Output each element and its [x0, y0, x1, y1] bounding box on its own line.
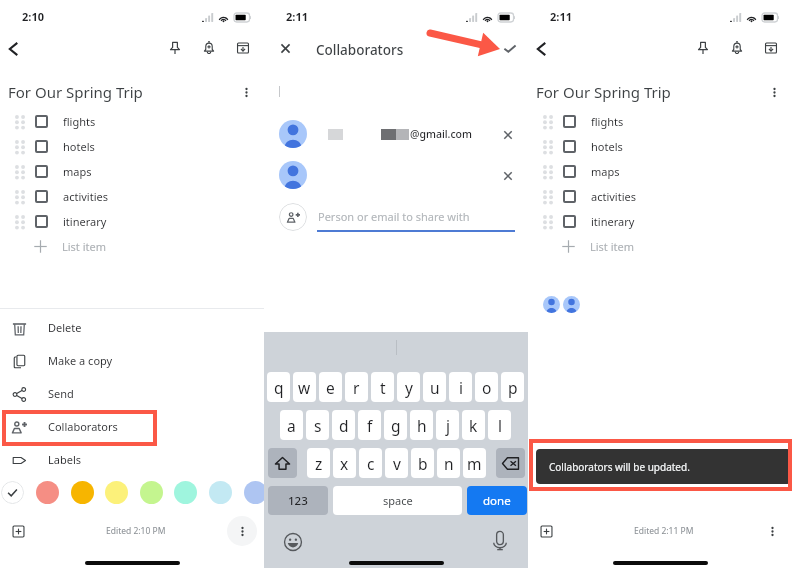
- button[interactable]: r: [345, 372, 368, 402]
- button[interactable]: [71, 481, 94, 504]
- button[interactable]: x: [333, 448, 356, 478]
- button[interactable]: a: [280, 410, 303, 440]
- button[interactable]: Remind me: [725, 36, 749, 60]
- staticText: n: [444, 453, 454, 474]
- button[interactable]: hotels: [528, 134, 792, 159]
- staticText: Collaborators will be updated.: [549, 460, 690, 474]
- button[interactable]: Add person: [279, 203, 307, 231]
- staticText: Send: [48, 386, 74, 401]
- button[interactable]: Voice input: [489, 529, 511, 551]
- button[interactable]: hotels: [0, 134, 264, 159]
- staticText: z: [315, 453, 323, 474]
- button[interactable]: n: [437, 448, 460, 478]
- staticText: Collaborators: [316, 41, 404, 59]
- button[interactable]: [209, 481, 232, 504]
- staticText: y: [405, 377, 413, 398]
- button[interactable]: m: [463, 448, 486, 478]
- staticText: Labels: [48, 452, 82, 467]
- button[interactable]: g: [384, 410, 407, 440]
- button[interactable]: List item: [528, 234, 792, 259]
- button[interactable]: [264, 120, 528, 148]
- button[interactable]: itinerary: [0, 209, 264, 234]
- staticText: p: [508, 377, 518, 398]
- button[interactable]: Emoji: [283, 532, 303, 552]
- button[interactable]: Save: [498, 36, 522, 60]
- button[interactable]: y: [397, 372, 420, 402]
- button[interactable]: [174, 481, 197, 504]
- button[interactable]: Remove collaborator: [496, 164, 519, 187]
- button[interactable]: p: [501, 372, 524, 402]
- button[interactable]: More options: [227, 516, 257, 546]
- button[interactable]: d: [332, 410, 355, 440]
- button[interactable]: Archive: [759, 36, 783, 60]
- button[interactable]: 123: [268, 486, 328, 515]
- button[interactable]: flights: [0, 109, 264, 134]
- button[interactable]: More options: [762, 521, 782, 541]
- button[interactable]: Back: [533, 40, 550, 57]
- button[interactable]: [105, 481, 128, 504]
- button[interactable]: activities: [0, 184, 264, 209]
- button[interactable]: Delete: [0, 311, 264, 344]
- button[interactable]: q: [267, 372, 290, 402]
- button[interactable]: i: [449, 372, 472, 402]
- button[interactable]: [264, 161, 528, 189]
- button[interactable]: maps: [528, 159, 792, 184]
- button[interactable]: More options: [764, 82, 784, 102]
- button[interactable]: space: [333, 486, 462, 515]
- button[interactable]: Shift: [268, 448, 297, 478]
- staticText: List item: [590, 239, 634, 254]
- button[interactable]: done: [467, 486, 527, 515]
- staticText: itinerary: [63, 214, 107, 229]
- button[interactable]: Back: [5, 40, 22, 57]
- button[interactable]: w: [293, 372, 316, 402]
- button[interactable]: Add: [7, 520, 29, 542]
- button[interactable]: [244, 481, 267, 504]
- button[interactable]: l: [488, 410, 511, 440]
- button[interactable]: Labels: [0, 443, 264, 476]
- staticText: e: [326, 377, 335, 398]
- button[interactable]: Close: [273, 36, 297, 60]
- button[interactable]: [36, 481, 59, 504]
- button[interactable]: Pin: [691, 36, 715, 60]
- staticText: 123: [288, 493, 308, 509]
- button[interactable]: flights: [528, 109, 792, 134]
- button[interactable]: u: [423, 372, 446, 402]
- button[interactable]: Backspace: [496, 448, 525, 478]
- button[interactable]: j: [436, 410, 459, 440]
- staticText: r: [353, 377, 360, 398]
- button[interactable]: Send: [0, 377, 264, 410]
- button[interactable]: s: [306, 410, 329, 440]
- button[interactable]: f: [358, 410, 381, 440]
- button[interactable]: No colour: [1, 481, 24, 504]
- staticText: flights: [591, 114, 624, 129]
- button[interactable]: [140, 481, 163, 504]
- button[interactable]: c: [359, 448, 382, 478]
- staticText: f: [367, 415, 373, 436]
- staticText: b: [418, 453, 428, 474]
- button[interactable]: List item: [0, 234, 264, 259]
- button[interactable]: t: [371, 372, 394, 402]
- button[interactable]: More options: [236, 82, 256, 102]
- button[interactable]: Pin: [163, 36, 187, 60]
- button[interactable]: h: [410, 410, 433, 440]
- button[interactable]: k: [462, 410, 485, 440]
- button[interactable]: v: [385, 448, 408, 478]
- button[interactable]: maps: [0, 159, 264, 184]
- button[interactable]: Make a copy: [0, 344, 264, 377]
- button[interactable]: e: [319, 372, 342, 402]
- staticText: @gmail.com: [410, 127, 472, 141]
- button[interactable]: o: [475, 372, 498, 402]
- button[interactable]: itinerary: [528, 209, 792, 234]
- staticText: x: [340, 453, 349, 474]
- button[interactable]: z: [307, 448, 330, 478]
- button[interactable]: activities: [528, 184, 792, 209]
- button[interactable]: Collaborators: [0, 410, 264, 443]
- button[interactable]: Add: [535, 520, 557, 542]
- staticText: done: [483, 493, 511, 509]
- staticText: space: [383, 493, 413, 508]
- button[interactable]: Remove collaborator: [496, 123, 519, 146]
- staticText: For Our Spring Trip: [536, 82, 671, 102]
- button[interactable]: Archive: [231, 36, 255, 60]
- button[interactable]: b: [411, 448, 434, 478]
- button[interactable]: Remind me: [197, 36, 221, 60]
